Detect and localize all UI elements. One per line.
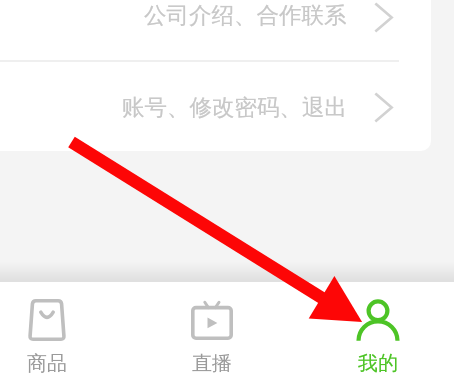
- staticText: 直播: [192, 351, 232, 376]
- staticText: 公司介绍、合作联系: [144, 1, 347, 29]
- other: 直播: [191, 299, 233, 340]
- other: 我的: [358, 299, 398, 341]
- button[interactable]: 直播: [142, 282, 282, 378]
- staticText: 商品: [27, 351, 67, 376]
- button[interactable]: 账号、修改密码、退出: [0, 62, 431, 151]
- staticText: 账号、修改密码、退出: [122, 93, 347, 121]
- button[interactable]: 公司介绍、合作联系: [0, 0, 431, 58]
- other: 商品: [28, 299, 66, 341]
- button[interactable]: 商品: [0, 282, 117, 378]
- button[interactable]: 我的: [308, 282, 448, 378]
- staticText: 我的: [358, 351, 398, 376]
